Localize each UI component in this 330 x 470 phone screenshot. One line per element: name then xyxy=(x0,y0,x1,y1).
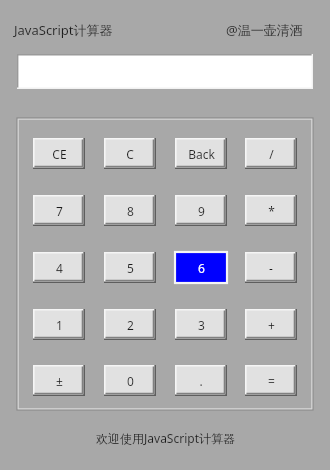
staticText: = xyxy=(268,373,275,389)
staticText: / xyxy=(269,146,274,162)
button[interactable]: / xyxy=(245,138,297,169)
button[interactable]: 7 xyxy=(33,195,85,226)
staticText: 欢迎使用JavaScript计算器 xyxy=(96,430,235,446)
staticText: JavaScript计算器 xyxy=(14,21,113,39)
staticText: 2 xyxy=(127,317,134,333)
staticText: CE xyxy=(52,146,67,162)
staticText: + xyxy=(268,317,275,333)
button[interactable]: 8 xyxy=(104,195,156,226)
staticText: - xyxy=(269,260,273,276)
staticText: . xyxy=(199,373,203,389)
staticText: 4 xyxy=(56,260,63,276)
button[interactable]: * xyxy=(245,195,297,226)
staticText: 8 xyxy=(127,203,134,219)
button[interactable]: 2 xyxy=(104,309,156,340)
button[interactable]: 4 xyxy=(33,252,85,283)
button[interactable]: ± xyxy=(33,365,85,396)
staticText: 1 xyxy=(56,317,63,333)
staticText: 0 xyxy=(127,373,134,389)
button[interactable]: + xyxy=(245,309,297,340)
button[interactable]: 9 xyxy=(175,195,227,226)
button[interactable]: = xyxy=(245,365,297,396)
button[interactable]: . xyxy=(175,365,227,396)
staticText: * xyxy=(268,203,275,219)
staticText: @温一壶清酒 xyxy=(226,21,303,39)
button[interactable]: 6 xyxy=(175,252,227,283)
staticText: 5 xyxy=(127,260,134,276)
staticText: Back xyxy=(188,146,215,162)
staticText: 7 xyxy=(56,203,63,219)
button[interactable]: 3 xyxy=(175,309,227,340)
button[interactable]: 0 xyxy=(104,365,156,396)
button[interactable] xyxy=(17,54,313,89)
staticText: 9 xyxy=(198,203,205,219)
button[interactable]: 1 xyxy=(33,309,85,340)
button[interactable]: Back xyxy=(175,138,227,169)
staticText: 3 xyxy=(198,317,205,333)
staticText: C xyxy=(126,146,134,162)
button[interactable]: 5 xyxy=(104,252,156,283)
button[interactable]: C xyxy=(104,138,156,169)
button[interactable]: - xyxy=(245,252,297,283)
staticText: ± xyxy=(56,373,63,389)
staticText: 6 xyxy=(198,260,205,276)
button[interactable]: CE xyxy=(33,138,85,169)
